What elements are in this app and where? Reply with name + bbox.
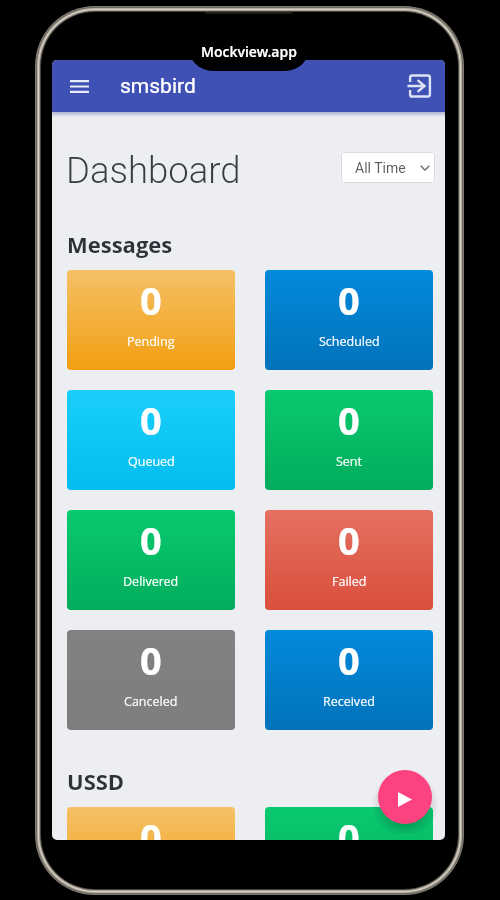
button[interactable]: 0 bbox=[265, 510, 433, 610]
staticText: 0 bbox=[140, 811, 162, 840]
button[interactable]: Run campaign bbox=[378, 770, 432, 824]
staticText: 0 bbox=[338, 514, 360, 566]
staticText: Queued bbox=[128, 453, 175, 470]
button[interactable]: 0 bbox=[67, 807, 235, 840]
staticText: Received bbox=[323, 693, 375, 710]
staticText: Canceled bbox=[124, 693, 178, 710]
staticText: Dashboard bbox=[66, 149, 241, 192]
staticText: 0 bbox=[338, 394, 360, 446]
button[interactable]: 0 bbox=[67, 510, 235, 610]
staticText: 0 bbox=[140, 274, 162, 326]
staticText: Delivered bbox=[123, 573, 179, 590]
staticText: Sent bbox=[336, 453, 362, 470]
staticText: smsbird bbox=[120, 74, 196, 99]
button[interactable]: Open navigation menu bbox=[59, 66, 99, 106]
button[interactable]: 0 bbox=[265, 630, 433, 730]
staticText: Scheduled bbox=[319, 333, 380, 350]
button[interactable]: 0 bbox=[265, 270, 433, 370]
button[interactable]: 0 bbox=[67, 390, 235, 490]
staticText: 0 bbox=[338, 274, 360, 326]
staticText: All Time bbox=[355, 160, 406, 176]
button[interactable]: Log out bbox=[399, 66, 439, 106]
staticText: 0 bbox=[140, 514, 162, 566]
staticText: Messages bbox=[67, 229, 173, 259]
button[interactable]: 0 bbox=[67, 630, 235, 730]
button[interactable]: 0 bbox=[265, 807, 433, 840]
staticText: Failed bbox=[332, 573, 367, 590]
staticText: 0 bbox=[140, 394, 162, 446]
button[interactable]: 0 bbox=[265, 390, 433, 490]
staticText: USSD bbox=[67, 766, 125, 796]
staticText: 0 bbox=[338, 811, 360, 840]
button[interactable]: All Time bbox=[341, 152, 435, 183]
staticText: 0 bbox=[338, 634, 360, 686]
staticText: Mockview.app bbox=[201, 42, 297, 61]
staticText: Pending bbox=[127, 333, 175, 350]
staticText: 0 bbox=[140, 634, 162, 686]
button[interactable]: 0 bbox=[67, 270, 235, 370]
